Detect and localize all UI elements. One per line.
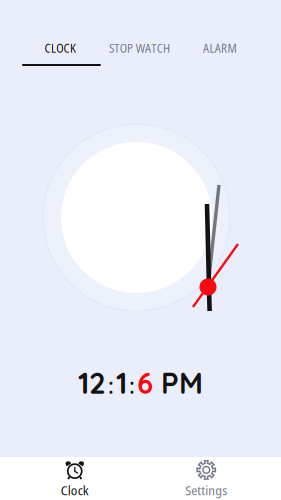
staticText: ALARM (203, 40, 236, 56)
button[interactable]: STOP WATCH (109, 34, 170, 62)
staticText: CLOCK (44, 40, 76, 56)
staticText: Settings (185, 481, 227, 499)
staticText: PM (153, 364, 203, 401)
staticText: : (129, 372, 135, 399)
staticText: : (108, 372, 114, 399)
staticText: Clock (61, 481, 89, 499)
staticText: 1 (116, 364, 127, 401)
button[interactable]: CLOCK (44, 34, 76, 62)
staticText: 6 (137, 364, 153, 401)
button[interactable]: Clock (9, 452, 140, 500)
staticText: 12 (78, 364, 106, 401)
button[interactable]: Settings (140, 452, 272, 500)
staticText: STOP WATCH (109, 40, 170, 56)
button[interactable]: ALARM (203, 34, 236, 62)
